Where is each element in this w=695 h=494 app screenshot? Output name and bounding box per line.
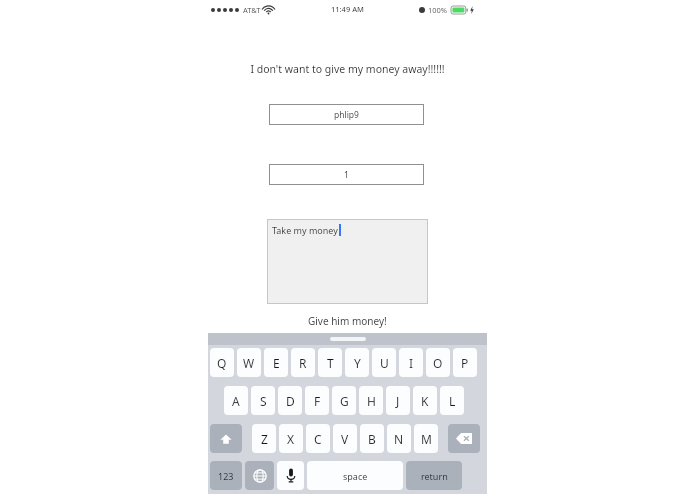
button[interactable]: W xyxy=(237,348,261,377)
staticText: return xyxy=(421,470,448,482)
staticText: L xyxy=(449,393,456,409)
button[interactable]: Delete xyxy=(448,424,480,453)
staticText: 11:49 AM xyxy=(331,4,364,14)
staticText: I don't want to give my money away!!!!!! xyxy=(250,62,445,76)
button[interactable]: D xyxy=(278,386,302,415)
staticText: C xyxy=(314,431,322,447)
button[interactable]: B xyxy=(360,424,384,453)
button[interactable]: I xyxy=(399,348,423,377)
button[interactable]: E xyxy=(264,348,288,377)
button[interactable]: V xyxy=(333,424,357,453)
staticText: F xyxy=(314,393,321,409)
staticText: W xyxy=(243,355,255,371)
button[interactable]: return xyxy=(406,461,462,490)
button[interactable]: T xyxy=(318,348,342,377)
button[interactable]: O xyxy=(426,348,450,377)
button[interactable]: X xyxy=(279,424,303,453)
button[interactable]: H xyxy=(359,386,383,415)
button[interactable]: Z xyxy=(252,424,276,453)
button[interactable]: R xyxy=(291,348,315,377)
staticText: B xyxy=(368,431,376,447)
staticText: AT&T xyxy=(243,5,261,15)
staticText: P xyxy=(461,355,469,371)
staticText: space xyxy=(343,470,368,482)
button[interactable]: Take my money xyxy=(267,219,428,304)
button[interactable]: phlip9 xyxy=(269,104,424,125)
staticText: A xyxy=(232,393,240,409)
staticText: Y xyxy=(354,355,361,371)
staticText: 123 xyxy=(218,470,234,482)
staticText: 1 xyxy=(344,169,349,181)
button[interactable]: Dictation xyxy=(277,461,304,490)
staticText: U xyxy=(380,355,389,371)
button[interactable]: J xyxy=(386,386,410,415)
staticText: K xyxy=(421,393,429,409)
staticText: I xyxy=(409,355,414,371)
staticText: Z xyxy=(261,431,268,447)
button[interactable]: A xyxy=(224,386,248,415)
button[interactable]: 123 xyxy=(210,461,242,490)
staticText: Q xyxy=(217,355,227,371)
staticText: X xyxy=(287,431,295,447)
button[interactable]: Y xyxy=(345,348,369,377)
button[interactable]: N xyxy=(387,424,411,453)
button[interactable]: S xyxy=(251,386,275,415)
button[interactable]: space xyxy=(307,461,403,490)
staticText: Give him money! xyxy=(308,314,387,328)
staticText: phlip9 xyxy=(334,109,359,121)
staticText: N xyxy=(394,431,404,447)
button[interactable]: M xyxy=(414,424,438,453)
button[interactable]: G xyxy=(332,386,356,415)
button[interactable]: Shift xyxy=(210,424,242,453)
staticText: G xyxy=(340,393,349,409)
button[interactable]: U xyxy=(372,348,396,377)
button[interactable]: 1 xyxy=(269,164,424,185)
button[interactable]: F xyxy=(305,386,329,415)
button[interactable]: C xyxy=(306,424,330,453)
staticText: Take my money xyxy=(272,224,338,236)
staticText: E xyxy=(273,355,280,371)
staticText: H xyxy=(367,393,376,409)
staticText: O xyxy=(433,355,443,371)
staticText: R xyxy=(299,355,307,371)
button[interactable]: L xyxy=(440,386,464,415)
staticText: M xyxy=(421,431,432,447)
staticText: 100% xyxy=(428,5,448,15)
staticText: D xyxy=(286,393,295,409)
button[interactable]: K xyxy=(413,386,437,415)
staticText: S xyxy=(260,393,267,409)
staticText: J xyxy=(396,393,400,409)
button[interactable]: Next keyboard xyxy=(245,461,274,490)
staticText: T xyxy=(327,355,334,371)
staticText: V xyxy=(341,431,349,447)
button[interactable]: Q xyxy=(210,348,234,377)
button[interactable]: P xyxy=(453,348,477,377)
